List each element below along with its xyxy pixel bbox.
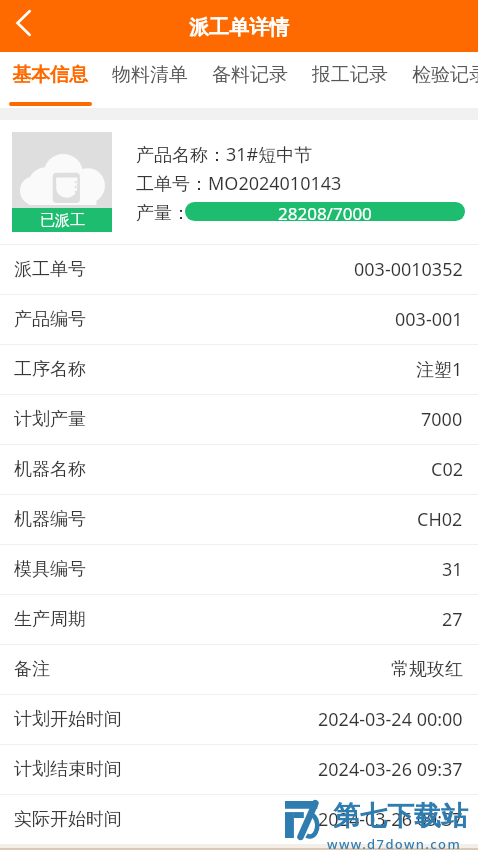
staticText: 7000 [421, 407, 463, 432]
button[interactable]: 报工记录 [300, 52, 400, 98]
button[interactable]: 计划开始时间 [0, 695, 478, 744]
button[interactable]: 检验记录 [400, 52, 478, 98]
staticText: 检验记录 [412, 63, 478, 87]
staticText: 模具编号 [14, 558, 86, 581]
staticText: 003-0010352 [354, 257, 463, 282]
staticText: 产品编号 [14, 308, 86, 331]
staticText: 31 [442, 557, 463, 582]
staticText: 2024-03-26 09:37 [318, 757, 463, 782]
staticText: 第七下载站 [333, 799, 468, 833]
staticText: 产品名称：31#短中节 [136, 142, 313, 167]
staticText: 机器编号 [14, 508, 86, 531]
button[interactable]: 备料记录 [200, 52, 300, 98]
staticText: 备注 [14, 658, 50, 681]
staticText: 2024-03-24 00:00 [318, 707, 463, 732]
button[interactable]: 产品编号 [0, 295, 478, 344]
staticText: 基本信息 [12, 63, 88, 87]
staticText: 注塑1 [416, 357, 463, 382]
staticText: 报工记录 [312, 63, 388, 87]
staticText: 003-001 [395, 307, 463, 332]
staticText: 计划结束时间 [14, 758, 122, 781]
button[interactable]: 计划产量 [0, 395, 478, 444]
staticText: 工单号：MO2024010143 [136, 171, 342, 196]
staticText: 派工单号 [14, 258, 86, 281]
staticText: 28208/7000 [278, 202, 372, 221]
staticText: 已派工 [40, 211, 85, 230]
staticText: 常规玫红 [391, 658, 463, 681]
button[interactable]: 机器名称 [0, 445, 478, 494]
staticText: C02 [431, 457, 463, 482]
staticText: 产量： [136, 202, 190, 225]
button[interactable]: 备注 [0, 645, 478, 694]
button[interactable]: 生产周期 [0, 595, 478, 644]
staticText: 实际开始时间 [14, 808, 122, 831]
staticText: 派工单详情 [189, 15, 289, 40]
button[interactable]: 工序名称 [0, 345, 478, 394]
button[interactable]: 基本信息 [0, 52, 100, 98]
button[interactable]: 派工单号 [0, 245, 478, 294]
staticText: 工序名称 [14, 358, 86, 381]
staticText: CH02 [417, 507, 463, 532]
button[interactable]: 模具编号 [0, 545, 478, 594]
staticText: 生产周期 [14, 608, 86, 631]
button[interactable]: 实际开始时间 [0, 795, 478, 844]
staticText: www.d7down.com [327, 835, 462, 850]
staticText: 27 [442, 607, 463, 632]
button[interactable]: 计划结束时间 [0, 745, 478, 794]
button[interactable]: 物料清单 [100, 52, 200, 98]
staticText: 2024-03-26 09:37 [318, 807, 463, 832]
staticText: 计划开始时间 [14, 708, 122, 731]
button[interactable]: 机器编号 [0, 495, 478, 544]
staticText: 备料记录 [212, 63, 288, 87]
button[interactable]: Back [0, 0, 46, 52]
staticText: 机器名称 [14, 458, 86, 481]
staticText: 物料清单 [112, 63, 188, 87]
staticText: 计划产量 [14, 408, 86, 431]
